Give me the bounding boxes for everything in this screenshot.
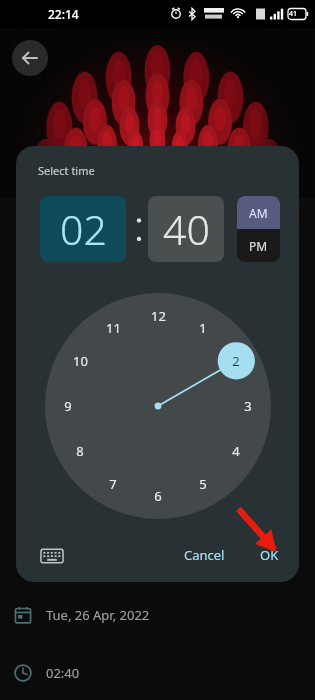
button[interactable]: PM [237, 229, 280, 262]
staticText: 4 [232, 442, 240, 460]
button[interactable]: Back [12, 40, 48, 76]
button[interactable]: 02:40 [0, 658, 315, 688]
staticText: 10 [73, 352, 88, 370]
button[interactable]: 40 [148, 196, 224, 262]
button[interactable]: OK [248, 538, 290, 572]
staticText: 40 [163, 201, 210, 257]
staticText: 41 [289, 9, 298, 19]
staticText: 1 [199, 319, 207, 337]
staticText: 6 [154, 487, 162, 505]
other: Annotation arrow pointing at OK [228, 503, 286, 561]
button[interactable]: AM [237, 196, 280, 229]
staticText: 22:14 [48, 6, 79, 22]
staticText: 2 [232, 352, 240, 370]
staticText: 8 [76, 442, 84, 460]
staticText: AM [249, 205, 268, 221]
staticText: 02 [60, 201, 107, 257]
staticText: Select time [38, 163, 95, 178]
button[interactable]: Tue, 26 Apr, 2022 [0, 600, 315, 630]
staticText: Cancel [184, 546, 225, 564]
staticText: OK [260, 546, 279, 564]
staticText: 02:40 [46, 664, 80, 682]
staticText: 7 [109, 475, 117, 493]
button[interactable]: 02 [40, 196, 126, 262]
staticText: PM [249, 238, 268, 254]
button[interactable]: Switch to text input [40, 544, 64, 568]
staticText: 9 [64, 397, 72, 415]
button[interactable]: 1 [45, 293, 271, 519]
staticText: Tue, 26 Apr, 2022 [46, 606, 150, 624]
staticText: 12 [151, 307, 166, 325]
button[interactable]: Cancel [174, 538, 234, 572]
staticText: 11 [106, 319, 121, 337]
staticText: 3 [244, 397, 252, 415]
staticText: 5 [199, 475, 207, 493]
